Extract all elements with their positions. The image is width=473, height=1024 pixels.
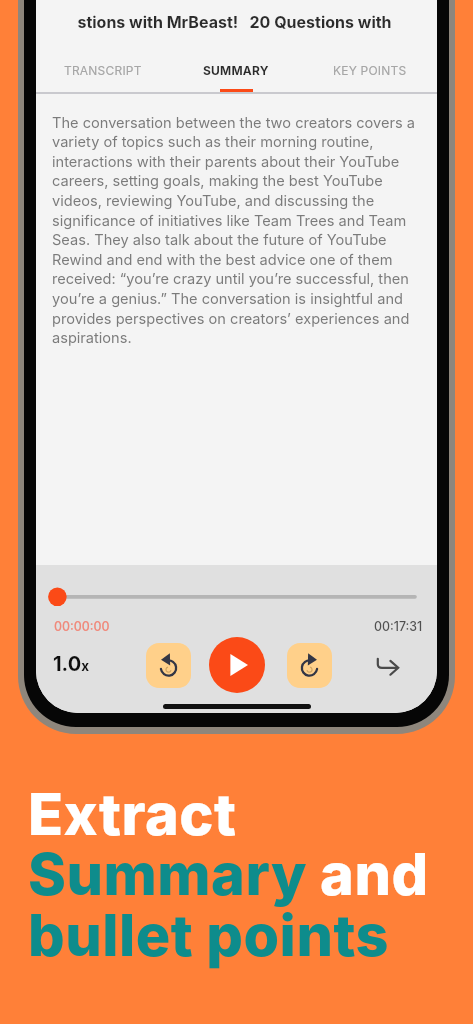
button[interactable]: Forward 5 seconds (287, 643, 332, 688)
staticText: videos, reviewing YouTube, and discussin… (52, 192, 375, 210)
staticText: interactions with their parents about th… (52, 153, 400, 171)
staticText: 00:00:00 (54, 619, 110, 634)
staticText: 00:17:31 (374, 619, 423, 634)
button[interactable]: KEY POINTS (303, 50, 437, 90)
staticText: KEY POINTS (333, 63, 407, 78)
button[interactable]: 1.0x (46, 645, 100, 683)
staticText: Rewind and end with the best advice one … (52, 251, 393, 269)
staticText: received: “you’re crazy until you’re suc… (52, 270, 409, 288)
button[interactable]: TRANSCRIPT (36, 50, 169, 90)
staticText: careers, setting goals, making the best … (52, 172, 383, 190)
staticText: significance of initiatives like Team Tr… (52, 212, 407, 230)
staticText: aspirations. (52, 329, 132, 347)
staticText: TRANSCRIPT (64, 63, 142, 78)
staticText: The conversation between the two creator… (52, 114, 415, 132)
staticText: 1.0x (53, 652, 90, 676)
staticText: stions with MrBeast! 20 Questions with (36, 12, 435, 31)
button[interactable]: SUMMARY (169, 50, 303, 90)
staticText: Extract Summary and bullet points (28, 779, 429, 970)
button[interactable]: Share (373, 651, 403, 681)
staticText: SUMMARY (203, 63, 269, 78)
staticText: variety of topics such as their morning … (52, 133, 374, 151)
button[interactable]: Play (209, 637, 265, 693)
button[interactable]: Rewind 5 seconds (146, 643, 191, 688)
staticText: provides perspectives on creators’ exper… (52, 310, 410, 328)
staticText: you’re a genius.” The conversation is in… (52, 290, 403, 308)
staticText: Seas. They also talk about the future of… (52, 231, 387, 249)
